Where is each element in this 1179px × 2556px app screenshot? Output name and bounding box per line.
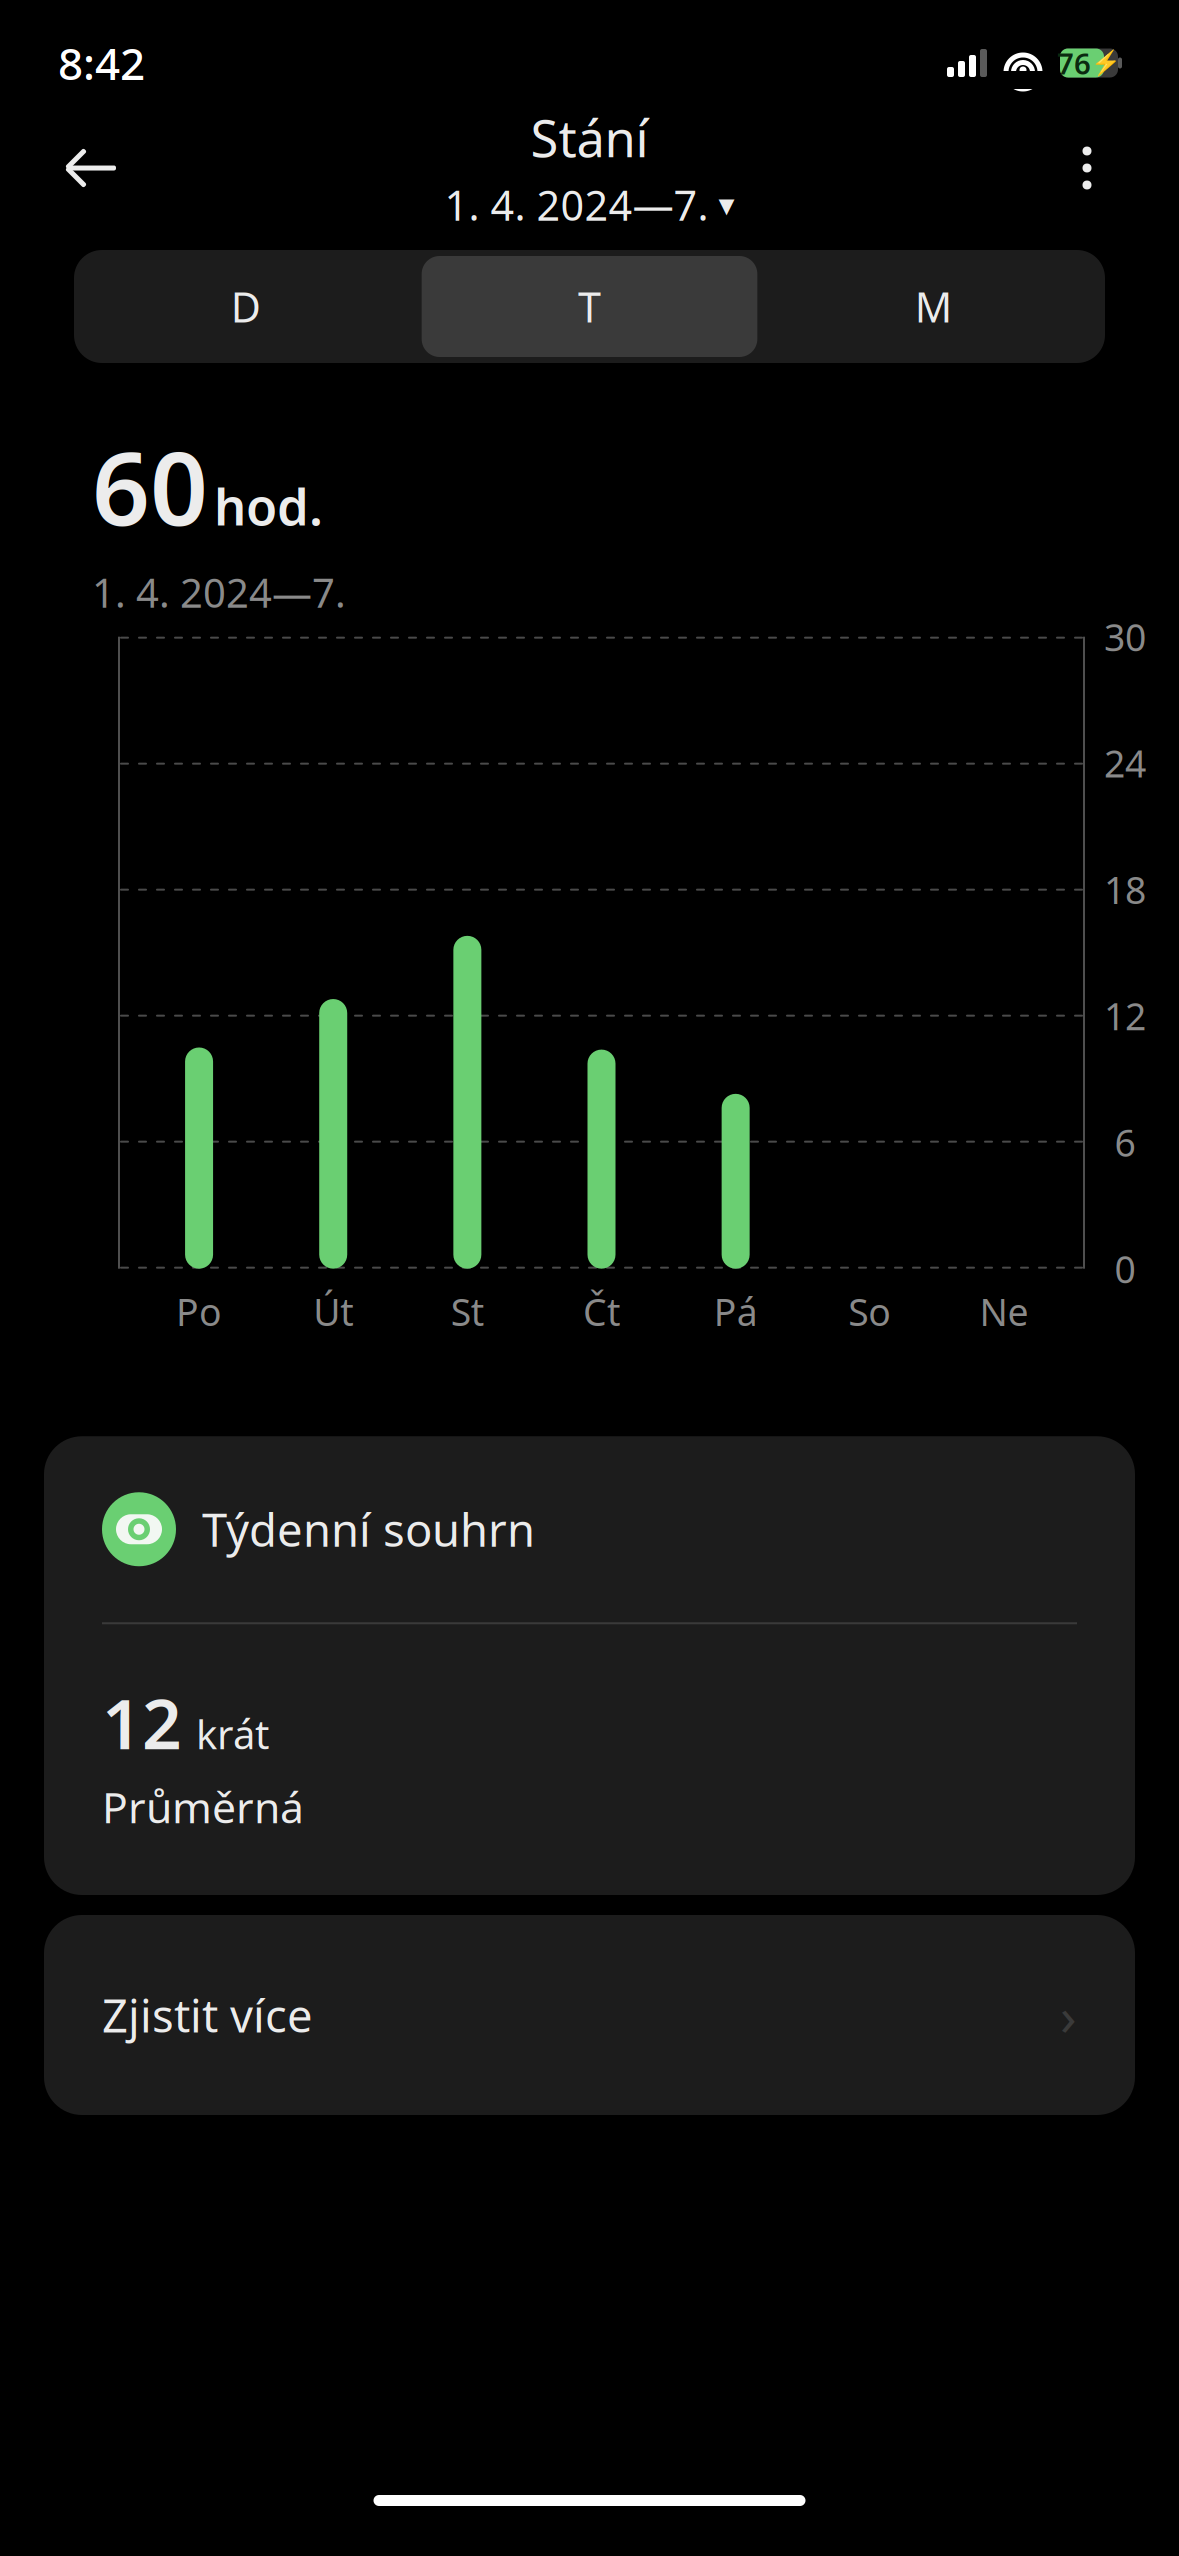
staticText: 18 [1104,865,1146,914]
staticText: ⚡ [1091,49,1121,77]
button[interactable]: M [761,250,1105,363]
staticText: 6 [1114,1117,1135,1167]
staticText: 12 [102,1676,182,1768]
staticText: Průměrná [102,1778,304,1835]
staticText: Zjistit více [102,1985,313,2045]
staticText: › [1060,1980,1077,2050]
staticText: Čt [583,1287,620,1336]
button[interactable]: Back [50,126,134,210]
staticText: 12 [1104,991,1146,1041]
staticText: 60 [92,419,208,554]
staticText: Ne [979,1287,1028,1336]
button[interactable]: Zjistit více [44,1915,1135,2115]
staticText: 24 [1104,738,1146,788]
button[interactable]: T [418,250,761,363]
staticText: 8:42 [58,34,145,92]
staticText: Týdenní souhrn [202,1499,535,1559]
staticText: St [451,1287,484,1336]
staticText: Út [313,1287,353,1336]
staticText: Po [176,1287,222,1336]
staticText: Pá [714,1287,758,1336]
button[interactable]: D [74,250,418,363]
staticText: So [848,1287,891,1336]
staticText: hod. [214,472,323,540]
staticText: krát [196,1707,269,1760]
staticText: M [915,279,952,334]
button[interactable]: Týdenní souhrn [44,1436,1135,1895]
staticText: 1. 4. 2024—7. [92,566,346,619]
staticText: 76 [1057,43,1091,82]
staticText: 0 [1114,1244,1135,1293]
staticText: T [578,279,601,334]
button[interactable]: More options [1045,126,1129,210]
staticText: 30 [1104,612,1146,661]
staticText: Stání [530,104,648,171]
staticText: 1. 4. 2024—7. [444,177,708,232]
staticText: ▾ [718,186,734,223]
staticText: D [231,279,261,334]
